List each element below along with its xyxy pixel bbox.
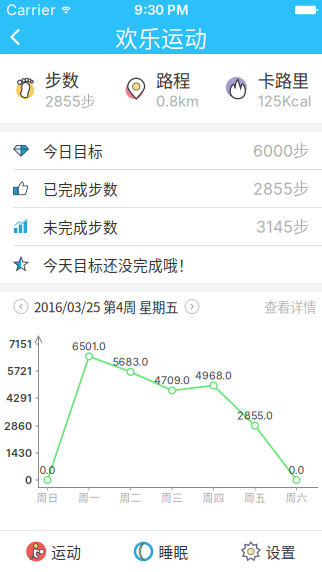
staticText: 设置 <box>266 541 296 562</box>
staticText: 5683.0 <box>112 355 148 368</box>
staticText: 125Kcal <box>258 92 312 110</box>
staticText: 2855步 <box>253 178 309 199</box>
staticText: 2016/03/25 第4周 星期五 <box>34 297 178 316</box>
staticText: 0.0 <box>39 463 55 476</box>
staticText: 今日目标 <box>43 140 103 161</box>
staticText: 9:30 PM <box>134 2 188 18</box>
staticText: 周二 <box>119 489 141 505</box>
staticText: 6000步 <box>253 140 309 161</box>
staticText: 4968.0 <box>195 369 232 382</box>
staticText: 未完成步数 <box>43 216 118 237</box>
staticText: 欢乐运动 <box>115 21 207 53</box>
staticText: 4291 <box>6 391 32 404</box>
staticText: 1430 <box>6 446 32 459</box>
staticText: Carrier <box>6 1 56 19</box>
button[interactable]: 设置 <box>215 531 322 572</box>
staticText: 周日 <box>36 489 58 505</box>
button[interactable]: 今天目标还没完成哦！ <box>0 246 322 283</box>
staticText: 步数 <box>45 67 79 92</box>
staticText: 周一 <box>78 489 100 505</box>
button[interactable]: 未完成步数 <box>0 208 322 246</box>
button[interactable]: 睡眠 <box>107 531 215 572</box>
staticText: 路程 <box>156 67 190 92</box>
staticText: 今天目标还没完成哦！ <box>43 254 193 275</box>
staticText: 周六 <box>285 489 307 505</box>
button[interactable]: Previous day <box>14 292 31 321</box>
staticText: 2855步 <box>45 92 96 110</box>
staticText: 3145步 <box>256 216 309 237</box>
staticText: 2860 <box>4 419 32 432</box>
staticText: 卡路里 <box>258 67 309 92</box>
staticText: 7151 <box>9 337 32 350</box>
staticText: 周四 <box>202 489 224 505</box>
staticText: 查看详情 <box>264 297 316 316</box>
button[interactable]: 运动 <box>0 531 107 572</box>
staticText: 0 <box>25 473 32 486</box>
button[interactable]: Next day <box>178 292 199 321</box>
staticText: 4709.0 <box>154 374 190 387</box>
staticText: 2855.0 <box>237 409 273 422</box>
button[interactable]: 今日目标 <box>0 132 322 170</box>
staticText: 0.8km <box>156 92 199 110</box>
button[interactable]: Back <box>0 20 37 54</box>
staticText: 周五 <box>244 489 266 505</box>
staticText: 周三 <box>161 489 183 505</box>
staticText: 5721 <box>7 364 32 377</box>
button[interactable]: 查看详情 <box>264 292 322 321</box>
button[interactable]: 已完成步数 <box>0 170 322 208</box>
staticText: 睡眠 <box>158 541 188 562</box>
staticText: 0.0 <box>288 463 304 476</box>
staticText: 6501.0 <box>72 340 106 353</box>
staticText: 运动 <box>51 541 81 562</box>
staticText: 已完成步数 <box>43 178 118 199</box>
